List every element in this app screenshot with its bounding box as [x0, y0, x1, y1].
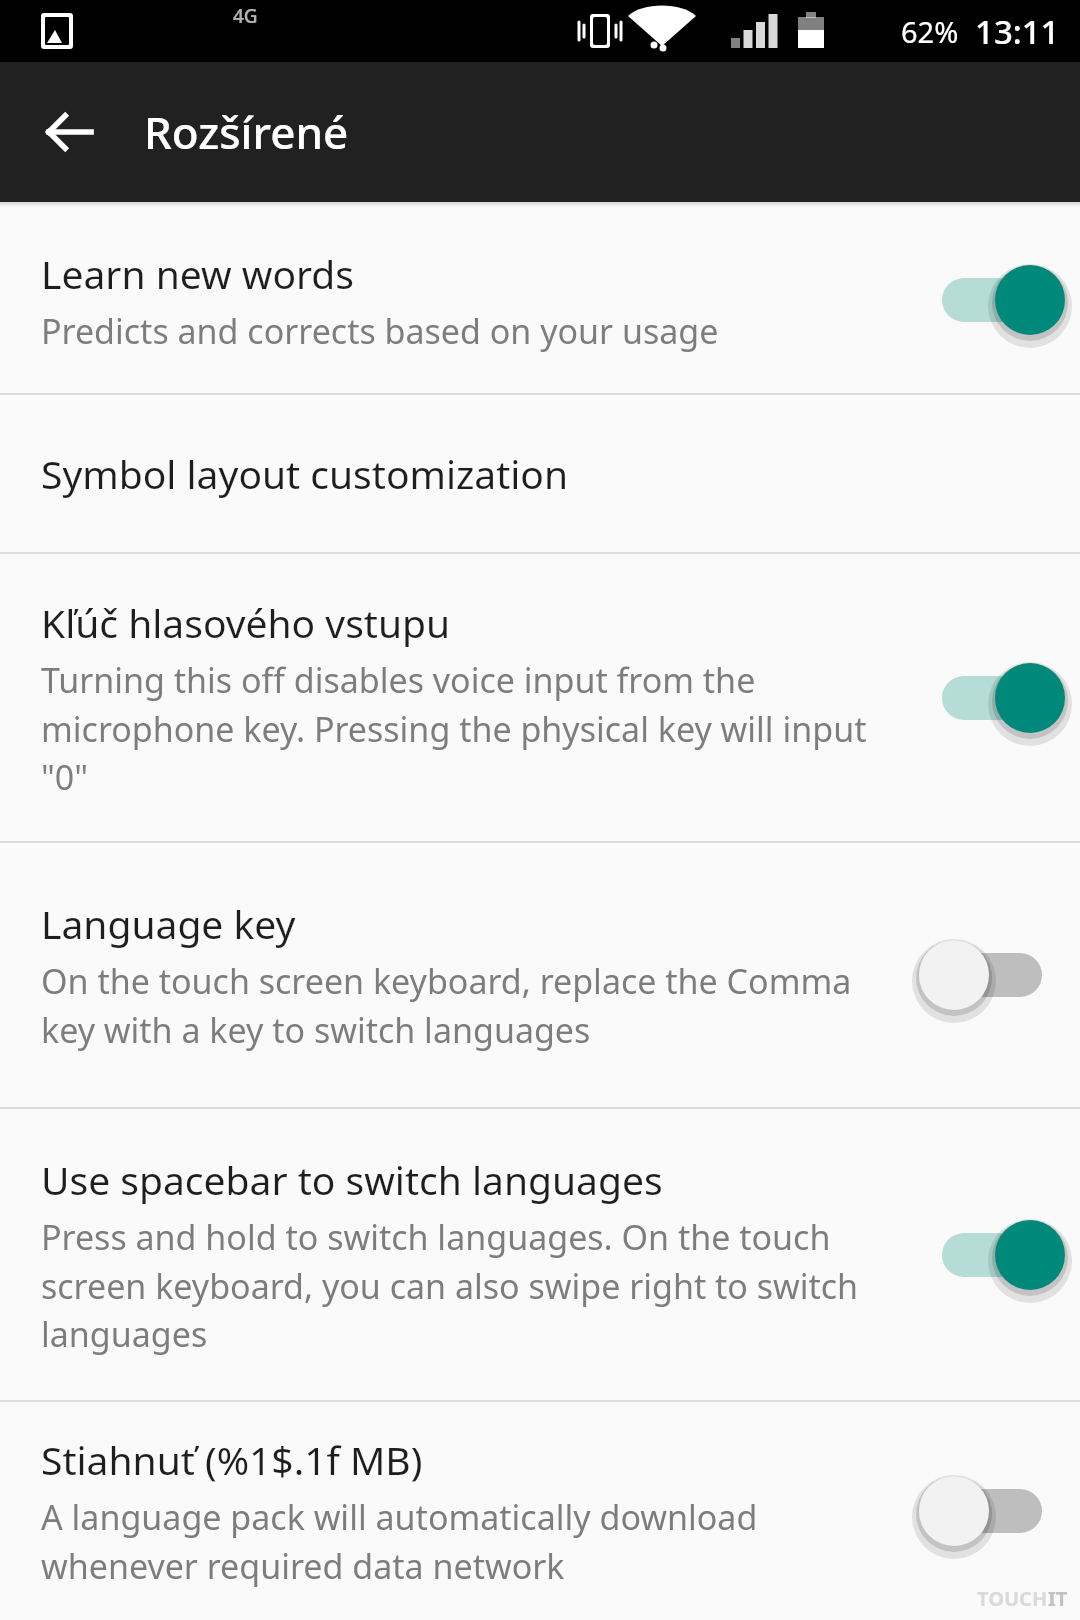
- button[interactable]: Use spacebar to switch languages: [0, 1109, 1080, 1400]
- staticText: Language key: [41, 897, 296, 950]
- staticText: Kľúč hlasového vstupu: [41, 596, 451, 649]
- staticText: Stiahnuť (%1$.1f MB): [41, 1433, 423, 1486]
- button[interactable]: Back: [24, 86, 116, 178]
- button[interactable]: Kľúč hlasového vstupu: [0, 554, 1080, 841]
- staticText: TOUCH: [977, 1585, 1048, 1612]
- staticText: A language pack will automatically downl…: [41, 1494, 880, 1589]
- staticText: Turning this off disables voice input fr…: [41, 657, 880, 800]
- staticText: 4G: [233, 3, 258, 29]
- button[interactable]: Toggle off: [938, 935, 1046, 1015]
- button[interactable]: Toggle on: [938, 1215, 1046, 1295]
- button[interactable]: Toggle off: [938, 1471, 1046, 1551]
- button[interactable]: Toggle on: [938, 658, 1046, 738]
- staticText: IT: [1048, 1585, 1068, 1612]
- staticText: 13:11: [975, 9, 1060, 54]
- staticText: Rozšírené: [144, 102, 349, 162]
- staticText: Symbol layout customization: [41, 447, 569, 500]
- staticText: Press and hold to switch languages. On t…: [41, 1214, 880, 1357]
- staticText: Predicts and corrects based on your usag…: [41, 308, 719, 354]
- staticText: Learn new words: [41, 247, 355, 300]
- button[interactable]: Learn new words: [0, 207, 1080, 393]
- button[interactable]: Toggle on: [938, 260, 1046, 340]
- staticText: 62%: [901, 12, 959, 51]
- button[interactable]: Stiahnuť (%1$.1f MB): [0, 1402, 1080, 1620]
- staticText: Use spacebar to switch languages: [41, 1153, 663, 1206]
- button[interactable]: Language key: [0, 843, 1080, 1107]
- staticText: On the touch screen keyboard, replace th…: [41, 958, 880, 1053]
- button[interactable]: Symbol layout customization: [0, 395, 1080, 552]
